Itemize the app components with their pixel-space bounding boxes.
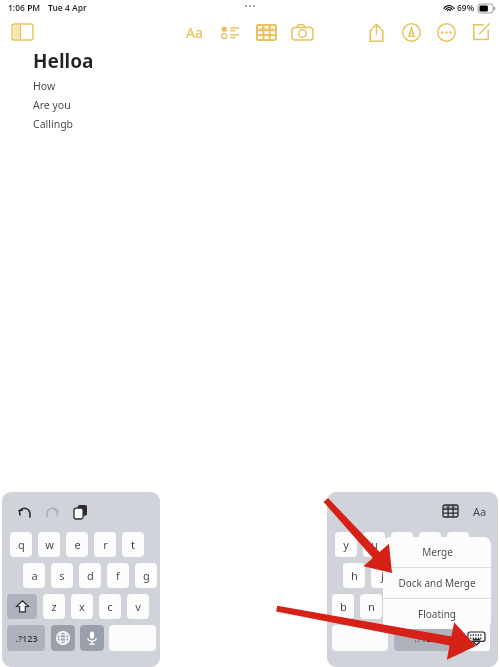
staticText: 1:06 PM bbox=[8, 2, 41, 14]
button[interactable]: i bbox=[391, 532, 413, 557]
staticText: Tue 4 Apr bbox=[48, 2, 87, 14]
staticText: 69% bbox=[457, 2, 475, 14]
staticText: v bbox=[135, 599, 141, 614]
button[interactable]: Share bbox=[362, 18, 390, 46]
staticText: d bbox=[87, 568, 94, 583]
staticText: g bbox=[143, 568, 150, 583]
button[interactable]: Format text bbox=[180, 18, 208, 46]
staticText: How bbox=[33, 79, 56, 93]
button[interactable]: Checklist bbox=[216, 18, 244, 46]
staticText: .?123 bbox=[414, 632, 437, 644]
button[interactable]: Key bbox=[462, 625, 490, 651]
staticText: r bbox=[103, 537, 108, 552]
staticText: n bbox=[368, 599, 375, 614]
staticText: j bbox=[381, 568, 384, 583]
button[interactable]: o bbox=[419, 532, 441, 557]
staticText: .?123 bbox=[15, 632, 38, 644]
staticText: h bbox=[351, 568, 358, 583]
button[interactable]: z bbox=[43, 594, 65, 619]
staticText: x bbox=[79, 599, 85, 614]
staticText: Are you bbox=[33, 98, 71, 112]
button[interactable]: Insert table bbox=[252, 18, 280, 46]
button[interactable]: Redo bbox=[42, 502, 62, 522]
button[interactable]: n bbox=[360, 594, 382, 619]
button[interactable]: s bbox=[51, 563, 73, 588]
staticText: w bbox=[45, 537, 54, 552]
button[interactable]: r bbox=[94, 532, 116, 557]
button[interactable]: Show sidebar bbox=[8, 18, 36, 46]
button[interactable]: g bbox=[135, 563, 157, 588]
button[interactable]: .?123 bbox=[7, 625, 45, 651]
button[interactable]: w bbox=[38, 532, 60, 557]
button[interactable]: a bbox=[23, 563, 45, 588]
staticText: a bbox=[31, 568, 38, 583]
staticText: c bbox=[107, 599, 113, 614]
button[interactable]: Merge bbox=[383, 537, 491, 567]
staticText: u bbox=[371, 537, 378, 552]
button[interactable]: y bbox=[335, 532, 357, 557]
button[interactable]: Paste bbox=[70, 502, 90, 522]
staticText: l bbox=[437, 568, 440, 583]
staticText: o bbox=[427, 537, 434, 552]
button[interactable]: Key bbox=[80, 625, 104, 651]
staticText: b bbox=[340, 599, 347, 614]
button[interactable]: l bbox=[427, 563, 449, 588]
staticText: Helloa bbox=[33, 48, 94, 74]
button[interactable]: h bbox=[343, 563, 365, 588]
button[interactable]: q bbox=[10, 532, 32, 557]
staticText: z bbox=[51, 599, 57, 614]
button[interactable]: x bbox=[71, 594, 93, 619]
button[interactable]: d bbox=[79, 563, 101, 588]
button[interactable]: More bbox=[432, 18, 460, 46]
button[interactable]: m bbox=[388, 594, 410, 619]
button[interactable]: c bbox=[99, 594, 121, 619]
button[interactable]: Insert table bbox=[439, 500, 461, 522]
button[interactable]: Key bbox=[109, 625, 156, 651]
button[interactable]: .?123 bbox=[394, 625, 456, 651]
staticText: Aa bbox=[473, 504, 487, 519]
button[interactable]: Key bbox=[51, 625, 75, 651]
staticText: k bbox=[407, 568, 413, 583]
button[interactable]: Insert media bbox=[288, 18, 316, 46]
button[interactable]: Key bbox=[332, 625, 388, 651]
staticText: f bbox=[116, 568, 120, 583]
button[interactable]: t bbox=[122, 532, 144, 557]
button[interactable]: k bbox=[399, 563, 421, 588]
button[interactable]: j bbox=[371, 563, 393, 588]
staticText: y bbox=[343, 537, 349, 552]
button[interactable]: e bbox=[66, 532, 88, 557]
staticText: Dock and Merge bbox=[398, 576, 476, 590]
button[interactable]: Markup bbox=[397, 18, 425, 46]
button[interactable]: b bbox=[332, 594, 354, 619]
staticText: Merge bbox=[422, 545, 453, 559]
button[interactable]: Undo bbox=[14, 502, 34, 522]
staticText: q bbox=[18, 537, 25, 552]
staticText: e bbox=[74, 537, 81, 552]
staticText: s bbox=[59, 568, 65, 583]
button[interactable]: v bbox=[127, 594, 149, 619]
button[interactable]: p bbox=[447, 532, 469, 557]
staticText: Floating bbox=[418, 607, 456, 621]
staticText: Aa bbox=[186, 23, 203, 42]
button[interactable]: Dock and Merge bbox=[383, 568, 491, 598]
staticText: t bbox=[131, 537, 135, 552]
staticText: Callingb bbox=[33, 117, 74, 131]
button[interactable]: u bbox=[363, 532, 385, 557]
button[interactable]: Floating bbox=[383, 599, 491, 629]
button[interactable]: Format text bbox=[469, 500, 491, 522]
button[interactable]: New note bbox=[467, 18, 495, 46]
button[interactable]: f bbox=[107, 563, 129, 588]
button[interactable]: Key bbox=[7, 594, 37, 619]
